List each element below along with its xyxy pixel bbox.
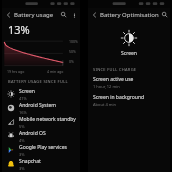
staticText: SINCE FULL CHARGE [93, 67, 137, 72]
button[interactable]: Google Play services [2, 143, 80, 157]
staticText: 41% [19, 96, 27, 101]
staticText: Screen active use [93, 76, 134, 83]
button[interactable]: Screen [2, 87, 80, 101]
staticText: 5% [19, 124, 25, 129]
staticText: Google Play services [19, 144, 67, 151]
staticText: Battery usage [14, 11, 54, 19]
staticText: 13% [8, 22, 30, 37]
staticText: 3% [19, 166, 25, 171]
staticText: Screen in background [93, 94, 145, 101]
button[interactable]: Search [159, 9, 170, 20]
staticText: 3% [19, 152, 25, 157]
staticText: 4 min ago [47, 69, 64, 74]
staticText: 100% [69, 39, 78, 44]
staticText: 16% [19, 110, 27, 115]
staticText: 19 hrs ago [7, 69, 25, 74]
button[interactable]: Android OS [2, 129, 80, 143]
staticText: Mobile network standby [19, 116, 76, 123]
button[interactable]: More options [69, 10, 79, 20]
button[interactable]: Back [88, 9, 99, 20]
staticText: About 4 min [93, 102, 116, 107]
staticText: 1 hour, 12 min [93, 84, 120, 89]
staticText: Screen [19, 88, 35, 95]
staticText: 0% [69, 59, 74, 64]
button[interactable]: Back [2, 9, 13, 20]
button[interactable]: Android System [2, 101, 80, 115]
staticText: 4% [19, 138, 25, 143]
staticText: Screen [121, 50, 137, 57]
button[interactable]: Search [58, 9, 69, 20]
button[interactable]: Snapchat [2, 157, 80, 171]
staticText: Battery Optimisation [100, 11, 159, 19]
staticText: Android System [19, 102, 57, 109]
staticText: 50% [69, 49, 76, 54]
staticText: BATTERY USAGE SINCE FULL CHARGE [8, 79, 80, 84]
staticText: Android OS [19, 130, 46, 137]
button[interactable]: Mobile network standby [2, 115, 80, 129]
staticText: Snapchat [19, 158, 41, 165]
